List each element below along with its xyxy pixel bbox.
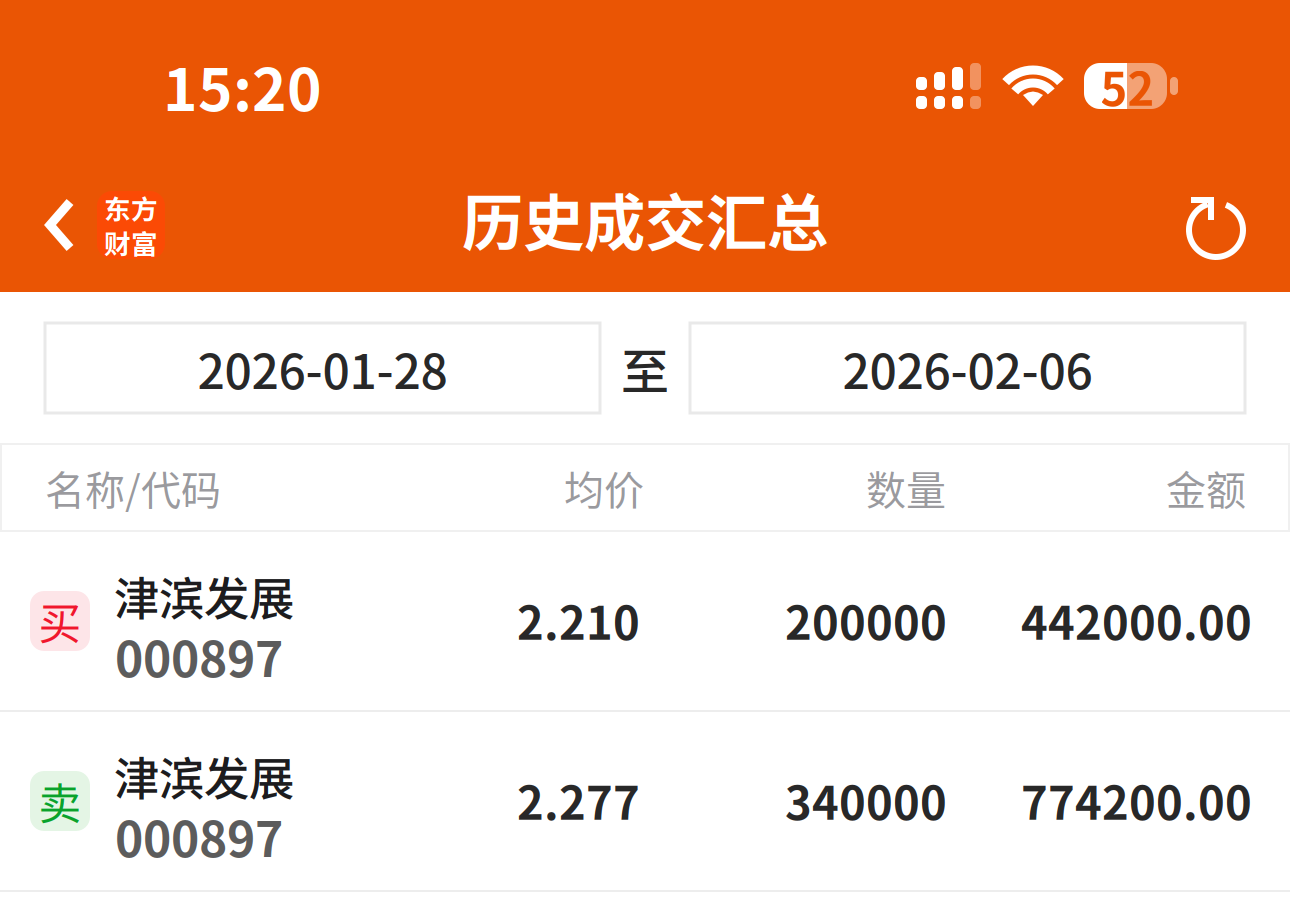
staticText: 财富 [104, 223, 158, 262]
staticText: 津滨发展 [114, 563, 294, 629]
button[interactable]: 2026-02-06 [690, 323, 1245, 413]
staticText: 2.277 [517, 767, 640, 833]
button[interactable]: 买 [0, 532, 1290, 712]
staticText: 774200.00 [1021, 767, 1252, 833]
button[interactable]: 卖 [0, 712, 1290, 892]
staticText: 均价 [564, 458, 644, 516]
staticText: 卖 [38, 770, 81, 832]
staticText: 名称/代码 [45, 458, 221, 516]
button[interactable]: 2026-01-28 [45, 323, 600, 413]
staticText: 东方 [104, 188, 158, 227]
button[interactable]: Back [0, 150, 200, 292]
staticText: 340000 [785, 767, 947, 833]
staticText: 200000 [785, 587, 947, 653]
staticText: 数量 [866, 458, 946, 516]
staticText: 15:20 [163, 43, 322, 128]
staticText: 2026-02-06 [842, 333, 1092, 403]
staticText: 历史成交汇总 [462, 175, 828, 263]
staticText: 2.210 [517, 587, 640, 653]
staticText: 52 [1100, 53, 1154, 119]
staticText: 000897 [115, 621, 283, 691]
staticText: 至 [621, 333, 669, 403]
staticText: 000897 [115, 801, 283, 871]
staticText: 442000.00 [1021, 587, 1252, 653]
staticText: 买 [38, 590, 81, 652]
staticText: 津滨发展 [114, 743, 294, 809]
button[interactable]: Refresh [1160, 150, 1280, 292]
staticText: 2026-01-28 [197, 333, 447, 403]
staticText: 金额 [1166, 458, 1246, 516]
